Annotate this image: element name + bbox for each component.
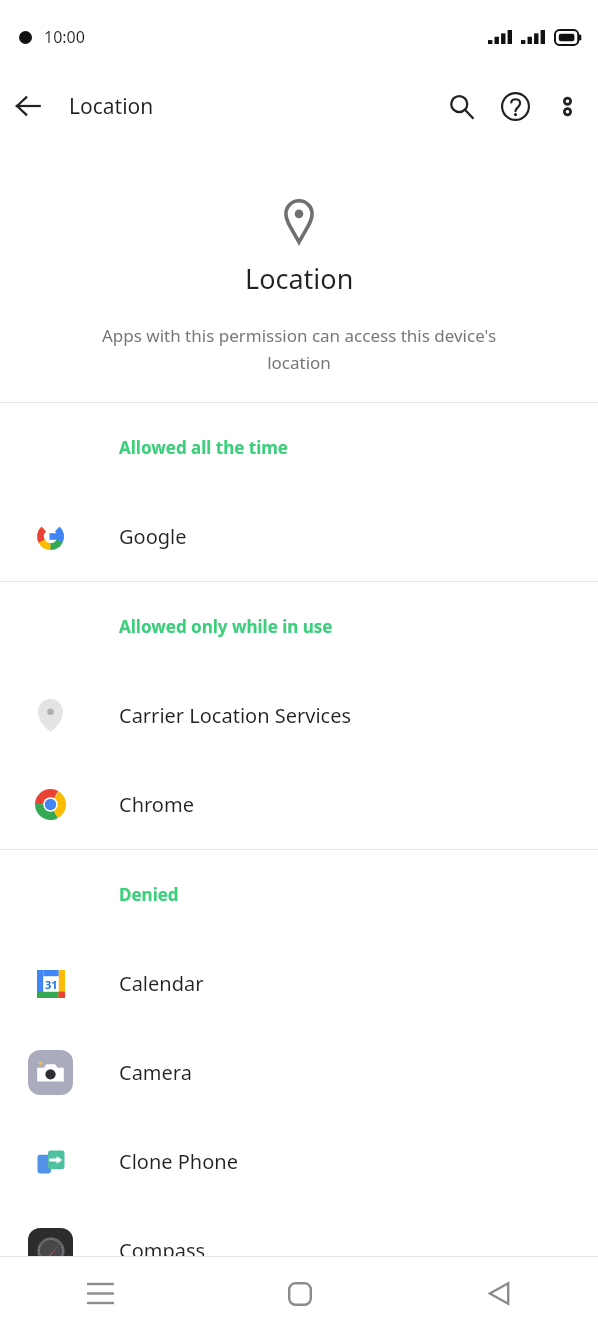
button[interactable]: Google: [0, 492, 598, 581]
staticText: Location: [69, 92, 154, 121]
staticText: Camera: [119, 1059, 192, 1086]
button[interactable]: Back: [399, 1257, 598, 1330]
button[interactable]: Back: [0, 78, 56, 134]
button[interactable]: Search: [434, 79, 488, 133]
button[interactable]: Home: [200, 1257, 399, 1330]
button[interactable]: Chrome: [0, 760, 598, 849]
staticText: Allowed only while in use: [119, 615, 333, 638]
staticText: Allowed all the time: [119, 436, 288, 459]
staticText: Apps with this permission can access thi…: [68, 324, 530, 374]
button[interactable]: Carrier Location Services: [0, 671, 598, 760]
staticText: Google: [119, 523, 187, 550]
button[interactable]: Compass: [0, 1206, 598, 1295]
staticText: Chrome: [119, 791, 194, 818]
button[interactable]: Camera: [0, 1028, 598, 1117]
staticText: 31: [45, 977, 58, 992]
button[interactable]: Recent apps: [0, 1257, 200, 1330]
staticText: Clone Phone: [119, 1148, 238, 1175]
staticText: Calendar: [119, 970, 204, 997]
staticText: Denied: [119, 883, 179, 906]
staticText: Location: [245, 260, 354, 297]
staticText: Compass: [119, 1237, 206, 1264]
button[interactable]: More options: [542, 81, 592, 131]
button[interactable]: Help: [488, 79, 542, 133]
button[interactable]: 31: [0, 939, 598, 1028]
staticText: Carrier Location Services: [119, 702, 352, 729]
staticText: 10:00: [44, 26, 85, 48]
button[interactable]: Clone Phone: [0, 1117, 598, 1206]
